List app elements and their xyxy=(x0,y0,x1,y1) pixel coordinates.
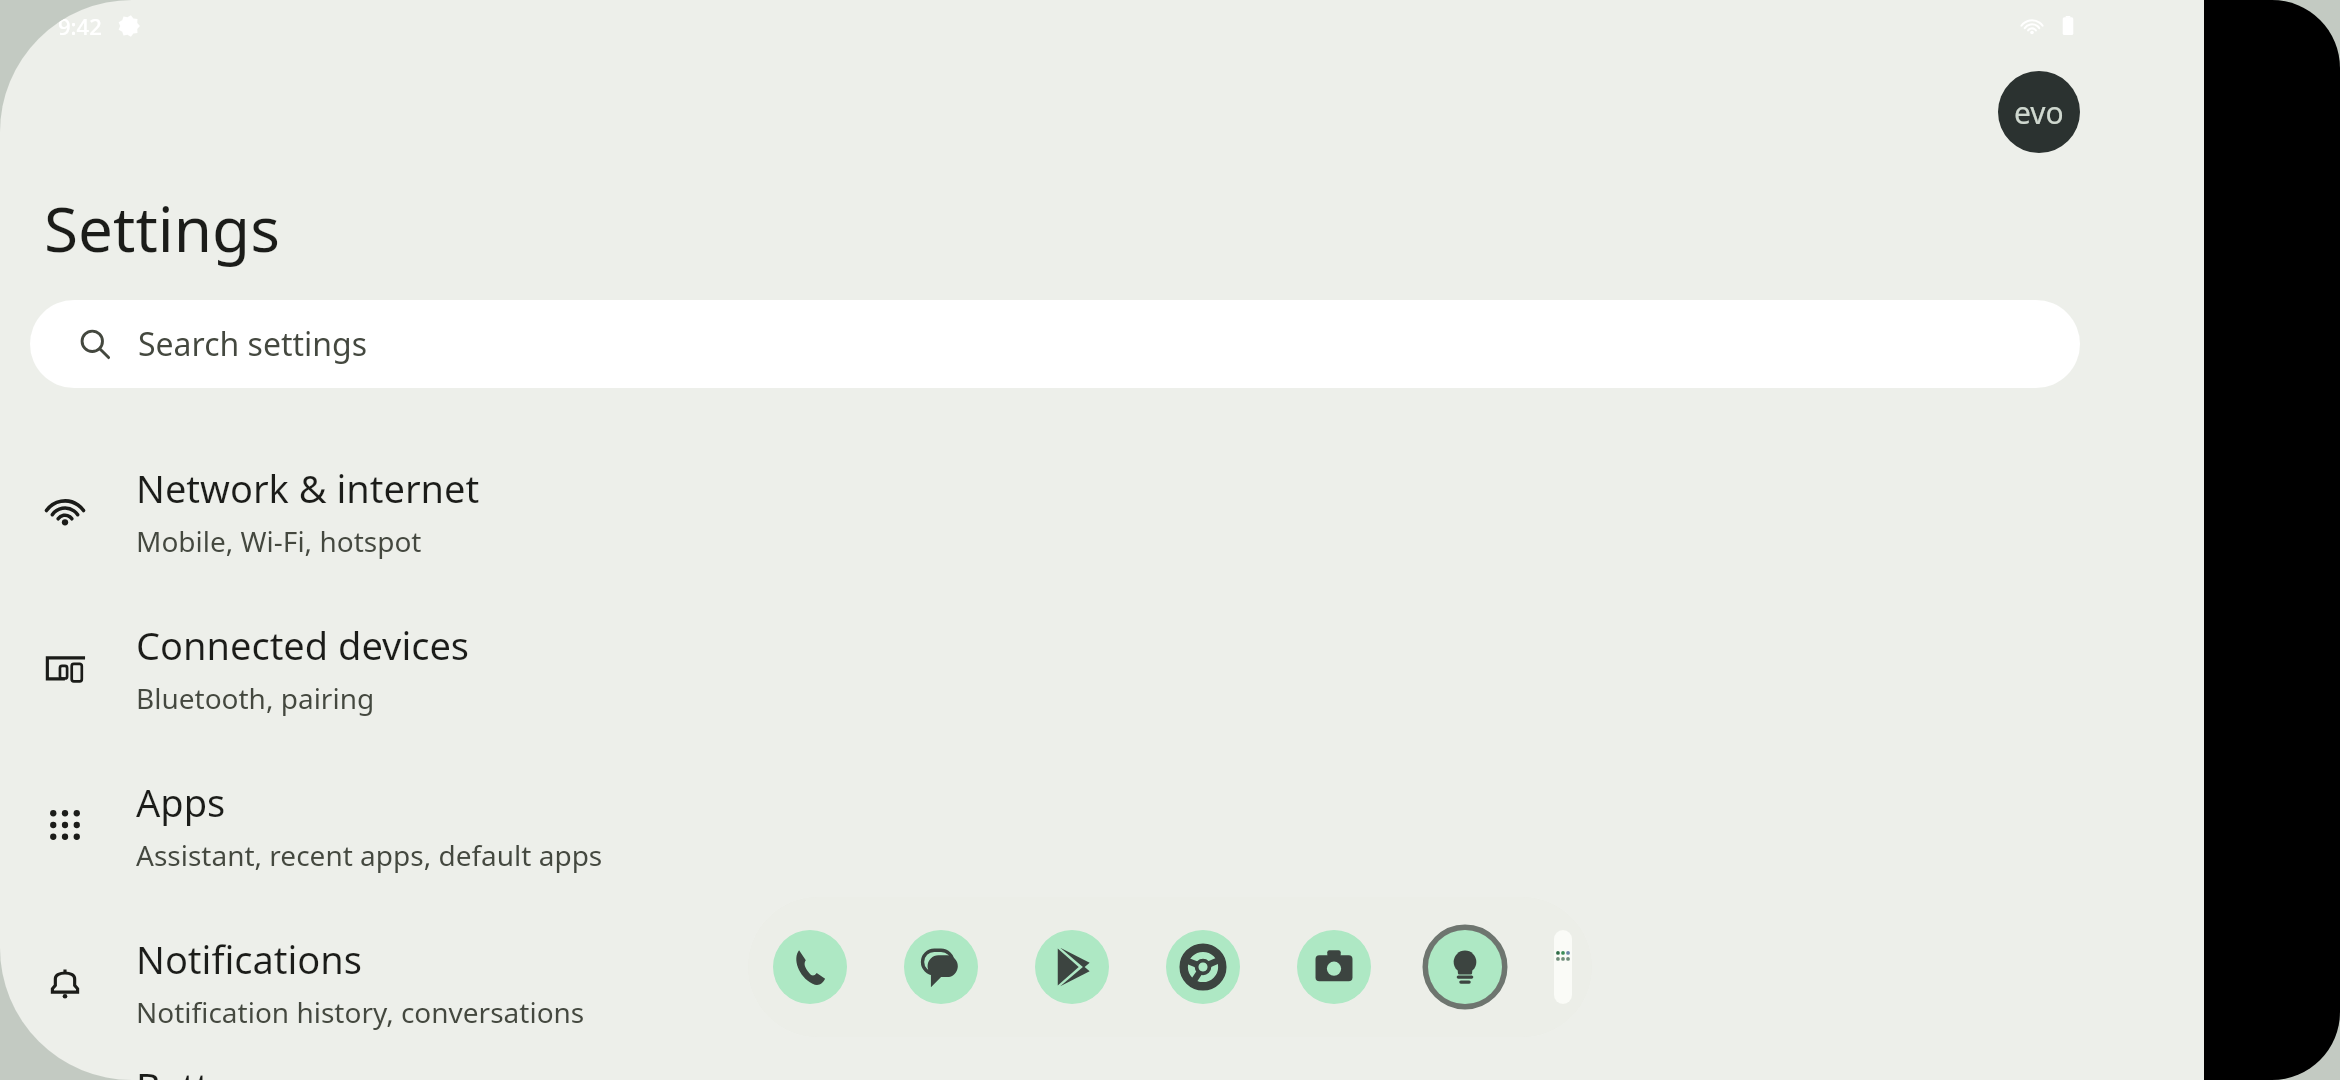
button[interactable]: All apps xyxy=(1554,930,1572,1004)
staticText: Notifications xyxy=(136,933,363,985)
staticText: Battery xyxy=(136,1060,266,1080)
staticText: Notification history, conversations xyxy=(136,993,585,1031)
button[interactable]: Account xyxy=(1998,71,2080,153)
button[interactable]: Camera xyxy=(1292,925,1376,1009)
button[interactable]: Network & internet xyxy=(0,432,2204,589)
button[interactable]: Battery xyxy=(0,1060,2204,1080)
staticText: Search settings xyxy=(138,322,368,366)
button[interactable]: Messages xyxy=(899,925,983,1009)
button[interactable]: Settings xyxy=(1423,925,1507,1009)
button[interactable]: Chrome xyxy=(1161,925,1245,1009)
button[interactable]: Notifications xyxy=(0,903,2204,1060)
staticText: Apps xyxy=(136,776,226,828)
staticText: evo xyxy=(2014,92,2064,133)
staticText: Settings xyxy=(44,186,280,270)
staticText: Mobile, Wi-Fi, hotspot xyxy=(136,522,422,560)
button[interactable]: Search settings xyxy=(30,300,2080,388)
button[interactable]: Phone xyxy=(768,925,852,1009)
staticText: 9:42 xyxy=(58,11,102,41)
staticText: Assistant, recent apps, default apps xyxy=(136,836,603,874)
button[interactable]: Apps xyxy=(0,746,2204,903)
staticText: Bluetooth, pairing xyxy=(136,679,375,717)
button[interactable]: Play Store xyxy=(1030,925,1114,1009)
staticText: Connected devices xyxy=(136,619,470,671)
button[interactable]: Connected devices xyxy=(0,589,2204,746)
staticText: Network & internet xyxy=(136,462,480,514)
